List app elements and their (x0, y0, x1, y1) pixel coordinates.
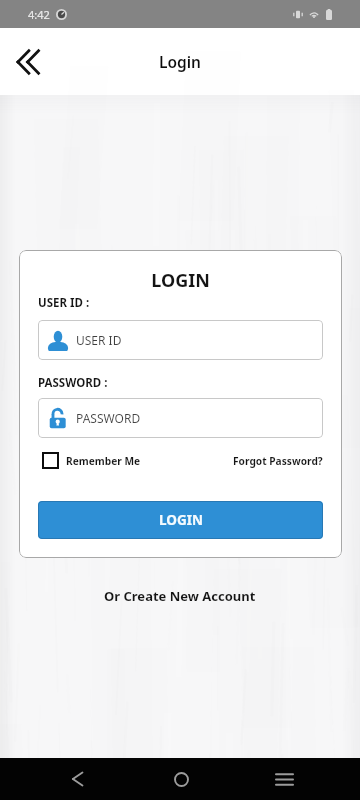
staticText: Or Create New Account (104, 587, 256, 605)
staticText: Forgot Password? (233, 454, 323, 468)
button[interactable]: PASSWORD (38, 398, 323, 438)
staticText: USER ID : (38, 295, 90, 311)
staticText: PASSWORD : (38, 375, 108, 391)
staticText: LOGIN (38, 268, 323, 293)
button[interactable]: Recent apps (260, 758, 308, 800)
staticText: 4:42 (28, 7, 50, 22)
staticText: PASSWORD (76, 410, 141, 426)
staticText: USER ID (76, 332, 122, 348)
button[interactable]: USER ID (38, 320, 323, 360)
staticText: Remember Me (66, 454, 141, 468)
button[interactable]: Forgot Password? (233, 454, 323, 468)
button[interactable]: Back (2, 36, 54, 88)
button[interactable]: Home (157, 758, 205, 800)
button[interactable]: Or Create New Account (98, 584, 262, 608)
staticText: Login (159, 51, 202, 72)
staticText: LOGIN (159, 511, 203, 529)
button[interactable]: LOGIN (38, 501, 323, 539)
button[interactable]: Remember Me (38, 452, 141, 469)
button[interactable]: Back (53, 758, 101, 800)
